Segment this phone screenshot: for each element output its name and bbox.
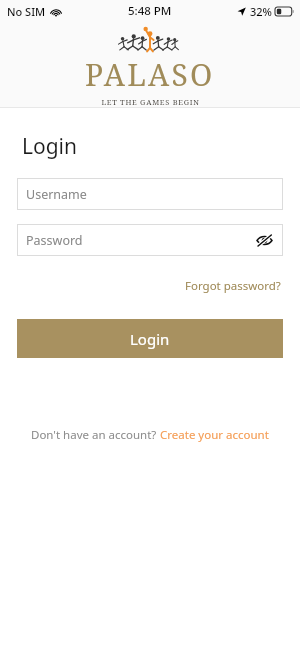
- staticText: Forgot password?: [185, 278, 281, 294]
- button[interactable]: Password: [17, 224, 283, 256]
- button[interactable]: Create your account: [160, 427, 269, 443]
- staticText: Password: [26, 232, 83, 249]
- button[interactable]: Username: [17, 178, 283, 210]
- button[interactable]: Login: [17, 319, 283, 358]
- staticText: LET THE GAMES BEGIN: [101, 97, 200, 107]
- staticText: Login: [130, 329, 170, 349]
- staticText: PALASO: [85, 54, 215, 95]
- button[interactable]: Forgot password?: [183, 276, 283, 296]
- staticText: Don't have an account?: [31, 427, 160, 443]
- staticText: Username: [26, 186, 87, 203]
- staticText: 32%: [250, 4, 272, 19]
- staticText: Create your account: [160, 427, 269, 443]
- staticText: No SIM: [7, 4, 46, 19]
- button[interactable]: Show password: [251, 227, 277, 253]
- staticText: Login: [22, 132, 78, 161]
- staticText: 5:48 PM: [128, 3, 172, 19]
